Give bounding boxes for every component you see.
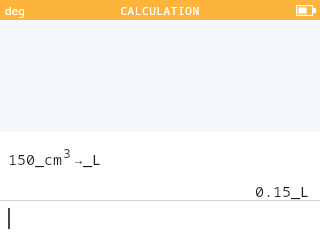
staticText: →_L (74, 149, 102, 169)
button[interactable]: deg (5, 3, 25, 18)
button[interactable]: Battery status (296, 5, 316, 16)
staticText: 0.15_L (255, 181, 310, 200)
staticText: 150_cm (8, 149, 63, 169)
staticText: 3 (63, 144, 71, 162)
button[interactable] (0, 201, 320, 240)
staticText: CALCULATION (120, 3, 200, 18)
button[interactable]: 150_cm (0, 132, 320, 200)
